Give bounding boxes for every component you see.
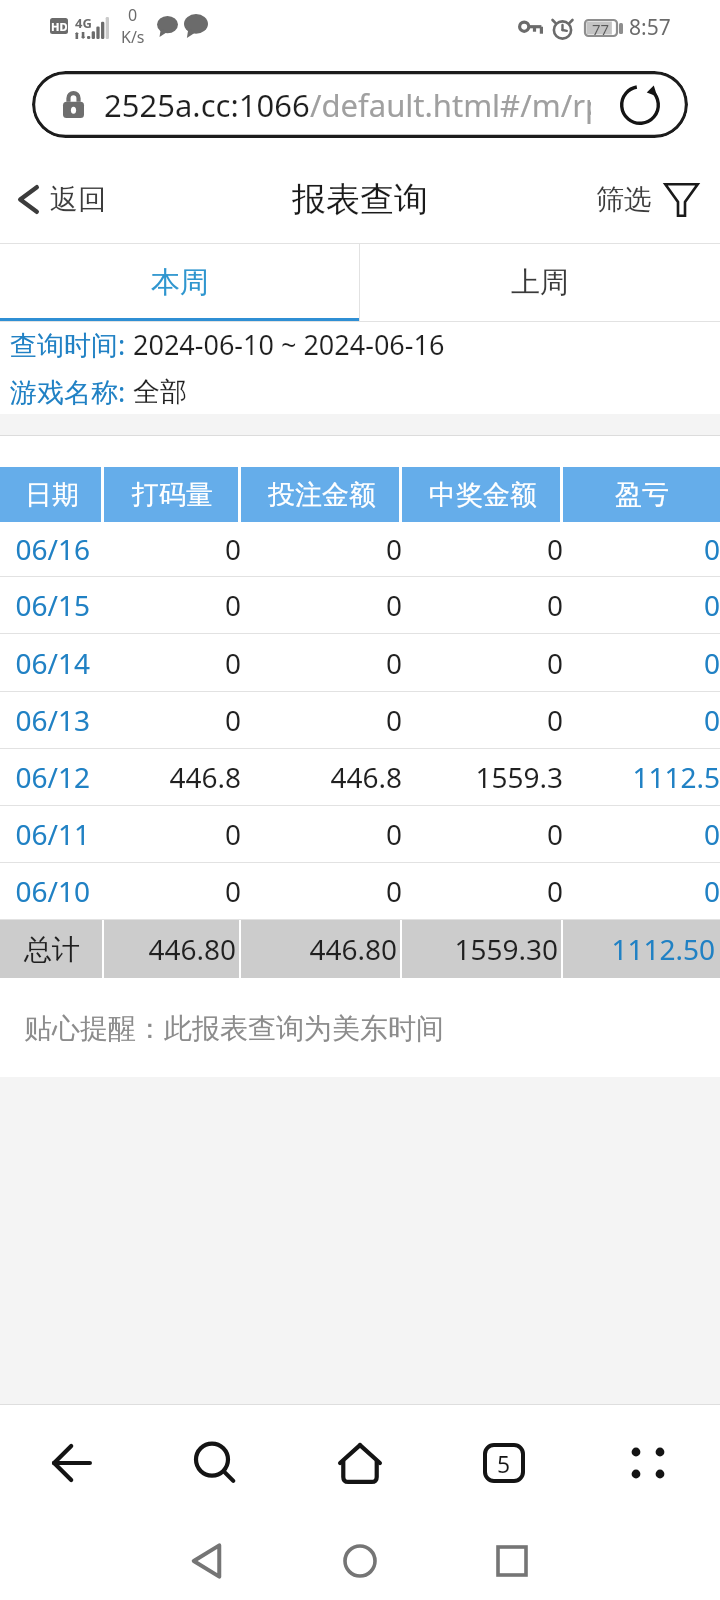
button[interactable]: 06/10 — [0, 863, 720, 919]
staticText: 0 — [224, 872, 241, 910]
staticText: 06/16 — [15, 530, 90, 568]
staticText: 0 — [703, 644, 720, 682]
staticText: 查询时间: — [10, 326, 133, 363]
staticText: 0 — [546, 701, 563, 739]
button[interactable]: Recents — [480, 1529, 544, 1593]
button[interactable]: Back — [174, 1529, 238, 1593]
staticText: 8:57 — [629, 13, 671, 42]
staticText: 0 — [224, 815, 241, 853]
staticText: 1559.30 — [454, 930, 558, 968]
button[interactable]: 2525a.cc:1066 — [32, 71, 688, 138]
staticText: 0 — [385, 701, 402, 739]
staticText: 0 — [385, 815, 402, 853]
button[interactable]: 06/12 — [0, 749, 720, 805]
button[interactable]: 筛选 — [596, 182, 699, 217]
staticText: 0 — [128, 4, 138, 26]
button[interactable]: 返回 — [18, 182, 106, 217]
staticText: 0 — [385, 872, 402, 910]
button[interactable]: Back — [0, 1405, 144, 1521]
staticText: 0 — [703, 701, 720, 739]
staticText: 06/13 — [15, 701, 90, 739]
staticText: 77 — [592, 19, 610, 37]
staticText: 0 — [385, 644, 402, 682]
button[interactable]: 06/11 — [0, 806, 720, 862]
button[interactable]: 本周 — [0, 244, 359, 321]
staticText: 返回 — [50, 182, 106, 217]
staticText: 0 — [703, 872, 720, 910]
staticText: 1112.5 — [632, 758, 720, 796]
staticText: 全部 — [133, 375, 187, 409]
button[interactable]: 06/15 — [0, 577, 720, 633]
staticText: 06/14 — [15, 644, 90, 682]
staticText: 0 — [385, 586, 402, 624]
staticText: 0 — [703, 586, 720, 624]
staticText: 446.80 — [148, 930, 236, 968]
staticText: 06/12 — [15, 758, 90, 796]
staticText: K/s — [121, 26, 145, 48]
staticText: 0 — [703, 530, 720, 568]
staticText: 报表查询 — [292, 178, 428, 221]
staticText: HD — [51, 19, 68, 34]
staticText: 0 — [224, 530, 241, 568]
button[interactable]: 06/14 — [0, 634, 720, 691]
staticText: 446.80 — [309, 930, 397, 968]
staticText: 0 — [546, 586, 563, 624]
staticText: /default.html#/m/rp — [310, 84, 591, 126]
staticText: 日期 — [25, 478, 79, 512]
staticText: 446.8 — [169, 758, 241, 796]
button[interactable]: Search — [144, 1405, 288, 1521]
staticText: 06/11 — [15, 815, 90, 853]
staticText: 总计 — [24, 932, 80, 967]
staticText: 2024-06-10 ~ 2024-06-16 — [133, 326, 445, 363]
staticText: 游戏名称: — [10, 373, 133, 410]
staticText: 2525a.cc:1066 — [104, 84, 310, 126]
button[interactable]: 06/16 — [0, 522, 720, 576]
staticText: 06/15 — [15, 586, 90, 624]
staticText: 1112.50 — [611, 930, 715, 968]
button[interactable]: Home — [328, 1529, 392, 1593]
staticText: 上周 — [511, 264, 569, 301]
staticText: 1559.3 — [475, 758, 563, 796]
staticText: 0 — [224, 701, 241, 739]
staticText: 0 — [224, 586, 241, 624]
staticText: 0 — [385, 530, 402, 568]
staticText: 5 — [497, 1448, 511, 1479]
button[interactable]: Home — [288, 1405, 432, 1521]
staticText: 中奖金额 — [429, 478, 537, 512]
staticText: 06/10 — [15, 872, 90, 910]
staticText: 0 — [703, 815, 720, 853]
button[interactable]: Menu — [576, 1405, 720, 1521]
staticText: 0 — [546, 530, 563, 568]
staticText: 筛选 — [596, 182, 652, 217]
staticText: 446.8 — [330, 758, 402, 796]
staticText: 0 — [546, 644, 563, 682]
staticText: 本周 — [151, 264, 209, 301]
staticText: 4G — [75, 14, 92, 32]
staticText: 0 — [546, 872, 563, 910]
staticText: 投注金额 — [268, 478, 376, 512]
button[interactable]: Reload — [619, 84, 661, 126]
staticText: 0 — [546, 815, 563, 853]
staticText: 盈亏 — [615, 478, 669, 512]
button[interactable]: 06/13 — [0, 692, 720, 748]
staticText: 0 — [224, 644, 241, 682]
staticText: 打码量 — [132, 478, 213, 512]
button[interactable]: Tabs — [432, 1405, 576, 1521]
staticText: 贴心提醒：此报表查询为美东时间 — [24, 1011, 444, 1046]
button[interactable]: 上周 — [360, 244, 720, 321]
